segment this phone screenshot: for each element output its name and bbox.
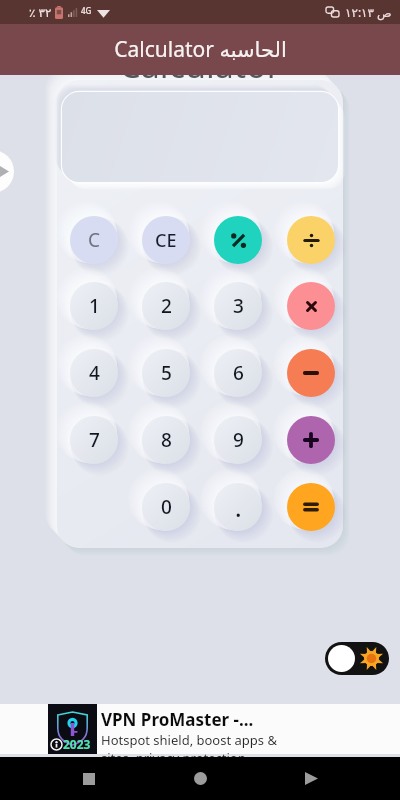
staticText: C [88,227,101,253]
button[interactable]: 5 [128,335,204,411]
staticText: CE [155,228,177,253]
staticText: 1 [89,293,100,319]
staticText: 3 [233,293,244,319]
button[interactable]: 8 [128,402,204,478]
button[interactable]: Divide [273,202,349,278]
button[interactable]: 0 [128,469,204,545]
button[interactable]: Recent apps [67,757,111,800]
staticText: 7 [89,427,100,453]
button[interactable]: Equals [273,469,349,545]
button[interactable]: 1 [56,268,132,344]
button[interactable]: C [56,202,132,278]
button[interactable]: Plus [273,402,349,478]
staticText: Calculator الحاسبه [114,35,287,64]
staticText: 4G [81,5,92,16]
button[interactable]: Minus [273,335,349,411]
staticText: 9 [233,427,244,453]
button[interactable]: 9 [200,402,276,478]
button[interactable]: Toggle light and dark theme [325,642,389,675]
staticText: . [235,491,242,524]
staticText: 4 [89,360,100,386]
button[interactable]: 2 [128,268,204,344]
button[interactable]: . [200,469,276,545]
staticText: sites, privacy protection [101,749,246,758]
staticText: 0 [161,494,172,520]
button[interactable]: Back [289,757,333,800]
staticText: 2023 [63,736,91,752]
staticText: 5 [161,360,172,386]
button[interactable]: 4 [56,335,132,411]
staticText: VPN ProMaster -... [101,708,254,731]
button[interactable]: 3 [200,268,276,344]
staticText: Calculator [119,42,281,88]
button[interactable]: CE [128,202,204,278]
staticText: ٪ ٣٢ [29,4,52,20]
staticText: ص ١٢:١٣ [345,4,392,20]
button[interactable]: 6 [200,335,276,411]
button[interactable]: Open drawer [0,150,14,193]
button[interactable]: Multiply [273,268,349,344]
staticText: 2 [161,293,172,319]
staticText: 6 [233,360,244,386]
staticText: 8 [161,427,172,453]
staticText: Hotspot shield, boost apps & [101,731,277,749]
button[interactable]: 7 [56,402,132,478]
button[interactable]: Percent [200,202,276,278]
button[interactable]: Home [178,757,222,800]
